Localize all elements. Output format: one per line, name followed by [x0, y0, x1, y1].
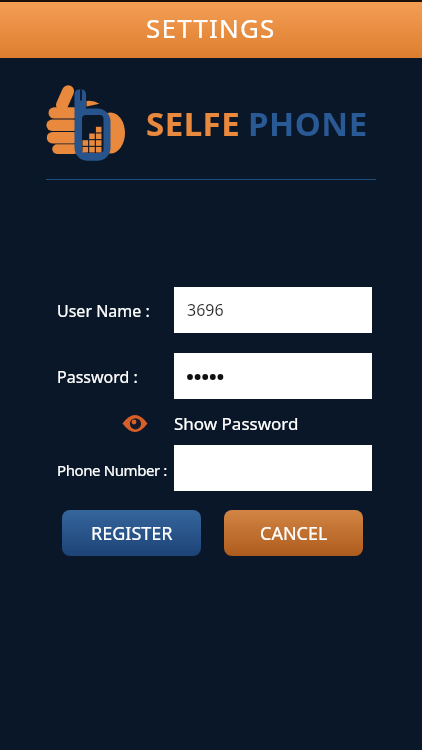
staticText: 3696 — [187, 299, 224, 321]
staticText: User Name : — [57, 300, 150, 322]
button[interactable]: 3696 — [174, 287, 372, 333]
staticText: SETTINGS — [146, 10, 276, 45]
staticText: PHONE — [248, 101, 368, 146]
button[interactable]: REGISTER — [62, 510, 201, 556]
staticText: Show Password — [174, 412, 299, 435]
button[interactable]: Show Password — [122, 410, 299, 437]
staticText: REGISTER — [91, 521, 173, 546]
staticText: SELFE — [146, 101, 241, 146]
button[interactable] — [174, 353, 372, 399]
staticText: Password : — [57, 366, 138, 388]
staticText: Phone Number : — [57, 460, 167, 480]
button[interactable]: CANCEL — [224, 510, 363, 556]
staticText: CANCEL — [260, 521, 328, 546]
button[interactable]: SETTINGS — [0, 2, 422, 58]
